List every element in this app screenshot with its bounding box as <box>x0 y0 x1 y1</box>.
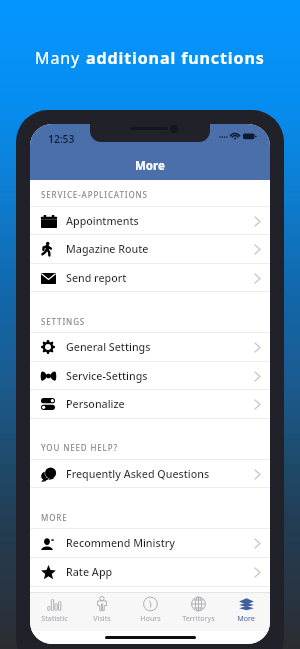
staticText: More <box>237 613 255 623</box>
button[interactable]: Hours <box>126 593 174 631</box>
staticText: Appointments <box>66 214 139 229</box>
button[interactable]: Service-Settings <box>30 362 270 390</box>
button[interactable]: Territorys <box>174 593 222 631</box>
staticText: Statistic <box>41 613 68 623</box>
button[interactable]: Statistic <box>30 593 78 631</box>
staticText: Send report <box>66 271 127 286</box>
staticText: Rate App <box>66 565 113 580</box>
staticText: Visits <box>93 613 111 623</box>
button[interactable]: Visits <box>78 593 126 631</box>
staticText: 12:53 <box>48 132 75 146</box>
button[interactable]: Recommend Ministry <box>30 529 270 557</box>
staticText: General Settings <box>66 340 151 355</box>
staticText: MORE <box>41 512 68 523</box>
staticText: SERVICE-APPLICATIONS <box>41 189 148 200</box>
button[interactable]: General Settings <box>30 333 270 361</box>
staticText: Many <box>35 47 86 69</box>
staticText: Recommend Ministry <box>66 536 175 551</box>
staticText: Service-Settings <box>66 369 148 384</box>
button[interactable]: Rate App <box>30 558 270 586</box>
staticText: additional functions <box>86 47 265 69</box>
button[interactable]: Appointments <box>30 207 270 235</box>
button[interactable]: More <box>222 593 270 631</box>
staticText: YOU NEED HELP? <box>41 442 118 453</box>
button[interactable]: Frequently Asked Questions <box>30 460 270 488</box>
staticText: Personalize <box>66 397 125 412</box>
staticText: More <box>135 158 165 174</box>
button[interactable]: Personalize <box>30 390 270 418</box>
staticText: Hours <box>140 613 161 623</box>
staticText: Frequently Asked Questions <box>66 467 210 482</box>
staticText: SETTINGS <box>41 316 86 327</box>
staticText: Magazine Route <box>66 242 149 257</box>
button[interactable]: Magazine Route <box>30 235 270 263</box>
staticText: Territorys <box>182 613 215 623</box>
button[interactable]: Send report <box>30 264 270 292</box>
